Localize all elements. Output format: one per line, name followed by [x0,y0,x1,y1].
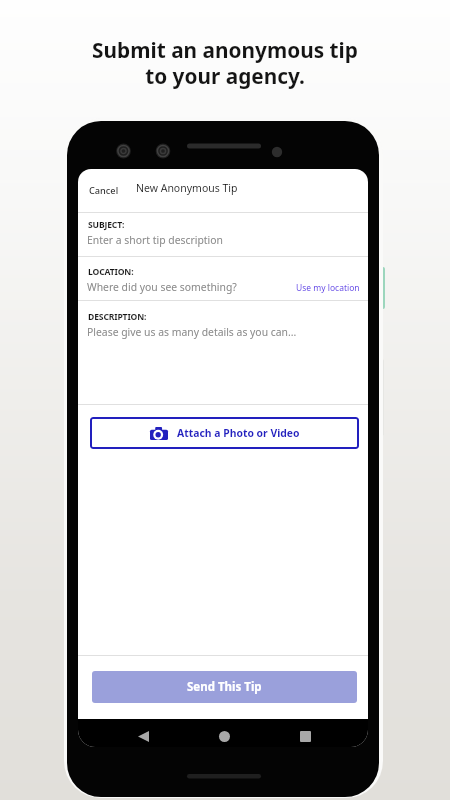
staticText: Cancel [89,184,119,197]
staticText: Send This Tip [187,679,262,695]
staticText: DESCRIPTION: [88,311,147,323]
staticText: SUBJECT: [88,219,125,231]
button[interactable]: Back [131,724,155,747]
button[interactable]: Send This Tip [92,671,357,703]
button[interactable]: Use my location [293,279,363,297]
button[interactable]: Attach a photo or video [90,417,359,449]
staticText: Use my location [296,282,360,294]
staticText: Attach a Photo or Video [177,426,300,440]
staticText: LOCATION: [88,266,134,278]
staticText: Please give us as many details as you ca… [87,325,297,339]
staticText: Submit an anonymous tip to your agency. [92,36,358,91]
button[interactable]: Recent apps [293,724,317,747]
button[interactable]: Home [212,724,236,747]
staticText: Where did you see something? [87,280,237,294]
staticText: Enter a short tip description [87,233,224,247]
button[interactable]: Cancel [85,180,123,201]
other: Attach a photo or video [150,427,168,440]
staticText: New Anonymous Tip [136,181,238,195]
